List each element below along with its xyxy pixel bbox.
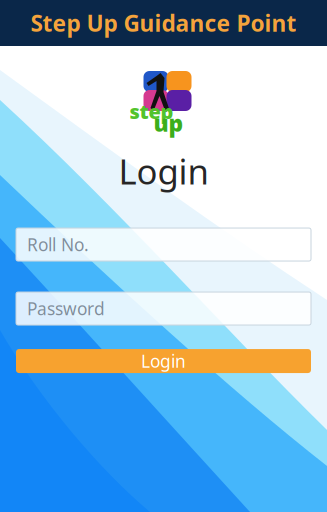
staticText: Step Up Guidance Point <box>30 8 296 38</box>
staticText: Roll No. <box>27 233 89 256</box>
staticText: up <box>153 108 183 138</box>
staticText: Login <box>141 349 186 372</box>
staticText: Login <box>118 148 208 194</box>
staticText: Password <box>27 297 105 320</box>
staticText: step <box>129 98 173 125</box>
button[interactable]: Login <box>16 349 311 373</box>
